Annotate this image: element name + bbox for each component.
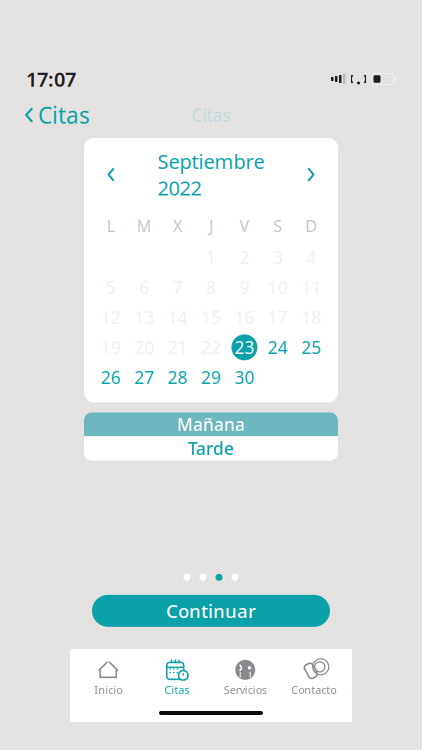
staticText: 21 xyxy=(168,336,188,359)
staticText: 10 xyxy=(268,276,288,299)
staticText: 19 xyxy=(101,336,121,359)
staticText: 23 xyxy=(234,336,254,359)
staticText: Citas xyxy=(191,103,230,126)
staticText: Servicios xyxy=(224,683,267,697)
staticText: D xyxy=(305,215,317,236)
button[interactable]: Inicio xyxy=(74,653,142,703)
staticText: M xyxy=(137,215,152,236)
staticText: V xyxy=(239,215,249,236)
staticText: 6 xyxy=(139,276,149,299)
staticText: 29 xyxy=(201,366,221,389)
staticText: 9 xyxy=(239,276,249,299)
button[interactable]: 30 xyxy=(234,363,254,391)
staticText: 28 xyxy=(168,366,188,389)
staticText: 4 xyxy=(306,246,316,269)
staticText: L xyxy=(107,215,115,236)
button[interactable]: 25 xyxy=(301,333,321,361)
staticText: 11 xyxy=(301,276,321,299)
button[interactable]: 24 xyxy=(268,333,288,361)
staticText: 24 xyxy=(268,336,288,359)
staticText: Citas xyxy=(164,683,189,697)
staticText: 17 xyxy=(268,306,288,329)
staticText: 22 xyxy=(201,336,221,359)
button[interactable]: Mes anterior xyxy=(98,160,124,190)
button[interactable]: Tarde xyxy=(84,436,338,460)
staticText: 30 xyxy=(234,366,254,389)
button[interactable]: Contacto xyxy=(279,653,348,703)
staticText: Continuar xyxy=(166,598,256,623)
button[interactable]: 29 xyxy=(201,363,221,391)
button[interactable]: Citas xyxy=(142,653,211,703)
staticText: 12 xyxy=(101,306,121,329)
button[interactable]: Mes siguiente xyxy=(298,160,324,190)
staticText: 13 xyxy=(134,306,154,329)
staticText: 20 xyxy=(134,336,154,359)
button[interactable]: 27 xyxy=(134,363,154,391)
button[interactable]: 26 xyxy=(101,363,121,391)
staticText: 17:07 xyxy=(26,66,76,92)
staticText: Mañana xyxy=(177,413,245,436)
button[interactable]: 28 xyxy=(168,363,188,391)
button[interactable]: 23 xyxy=(231,333,257,361)
button[interactable]: Servicios xyxy=(211,653,279,703)
staticText: Septiembre 2022 xyxy=(157,148,264,201)
staticText: 1 xyxy=(206,246,216,269)
staticText: 14 xyxy=(168,306,188,329)
staticText: Contacto xyxy=(291,683,336,697)
staticText: 25 xyxy=(301,336,321,359)
staticText: Citas xyxy=(38,100,90,130)
staticText: 5 xyxy=(106,276,116,299)
button[interactable]: Mañana xyxy=(84,412,338,436)
staticText: 7 xyxy=(173,276,183,299)
staticText: 16 xyxy=(234,306,254,329)
staticText: Tarde xyxy=(188,437,234,460)
staticText: 3 xyxy=(273,246,283,269)
staticText: 18 xyxy=(301,306,321,329)
staticText: S xyxy=(273,215,282,236)
staticText: X xyxy=(173,215,182,236)
staticText: 26 xyxy=(101,366,121,389)
staticText: 15 xyxy=(201,306,221,329)
staticText: 27 xyxy=(134,366,154,389)
staticText: Inicio xyxy=(94,683,122,697)
button[interactable]: Continuar xyxy=(92,595,330,627)
staticText: 8 xyxy=(206,276,216,299)
staticText: J xyxy=(209,215,213,236)
staticText: 2 xyxy=(239,246,249,269)
button[interactable]: Citas xyxy=(22,94,92,136)
